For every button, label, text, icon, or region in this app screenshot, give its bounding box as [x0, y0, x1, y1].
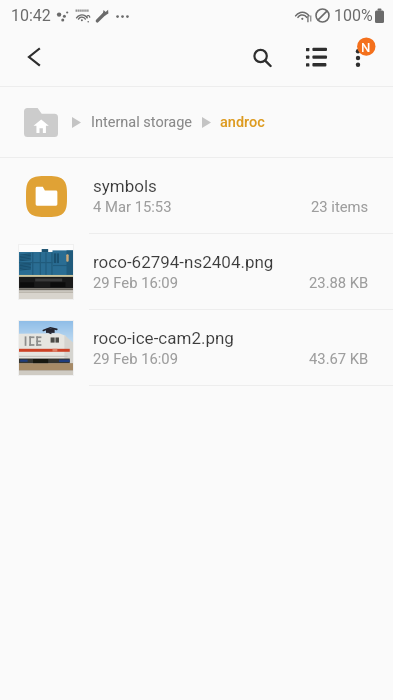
- staticText: 29 Feb 16:09: [93, 350, 179, 367]
- staticText: roco-ice-cam2.png: [93, 328, 234, 348]
- staticText: symbols: [93, 176, 157, 196]
- staticText: 29 Feb 16:09: [93, 274, 179, 291]
- button[interactable]: Internal storage: [91, 114, 193, 131]
- staticText: N: [361, 40, 371, 55]
- staticText: 23.88 KB: [309, 274, 369, 291]
- button[interactable]: roco-62794-ns2404.png: [0, 234, 393, 309]
- button[interactable]: androc: [220, 114, 265, 131]
- staticText: 23 items: [311, 198, 369, 215]
- button[interactable]: Home: [24, 108, 58, 137]
- button[interactable]: Change view: [292, 34, 340, 82]
- staticText: 43.67 KB: [309, 350, 369, 367]
- button[interactable]: Search: [237, 34, 285, 82]
- button[interactable]: roco-ice-cam2.png: [0, 310, 393, 385]
- staticText: 4 Mar 15:53: [93, 198, 172, 215]
- staticText: 10:42: [11, 6, 51, 25]
- staticText: roco-62794-ns2404.png: [93, 252, 274, 272]
- staticText: 100%: [334, 6, 373, 25]
- button[interactable]: Navigate up: [10, 34, 58, 82]
- button[interactable]: symbols: [0, 158, 393, 233]
- button[interactable]: More options: [334, 34, 382, 82]
